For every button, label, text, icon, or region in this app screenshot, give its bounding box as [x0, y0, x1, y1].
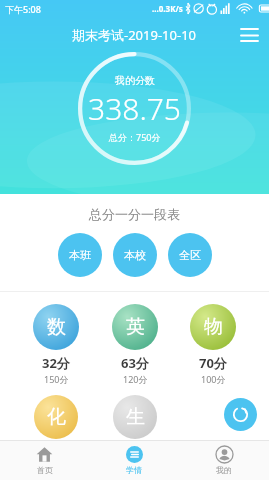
staticText: 120分	[123, 373, 148, 385]
button[interactable]: 我的	[179, 440, 269, 480]
staticText: 我的	[216, 465, 232, 475]
button[interactable]: Refresh	[224, 398, 257, 431]
staticText: 物	[204, 315, 223, 339]
button[interactable]: 英	[112, 304, 158, 385]
staticText: ...0.3K/s	[152, 3, 183, 14]
staticText: 学情	[126, 465, 142, 475]
button[interactable]: 生	[112, 395, 158, 439]
staticText: 32分	[42, 354, 70, 372]
staticText: 150分	[44, 373, 69, 385]
staticText: 总分：750分	[109, 131, 161, 143]
staticText: 我的分数	[115, 74, 155, 87]
staticText: 期末考试-2019-10-10	[72, 26, 197, 44]
button[interactable]: 学情	[89, 440, 179, 480]
staticText: 338.75	[88, 88, 181, 129]
button[interactable]: 数	[33, 304, 79, 385]
staticText: 数	[47, 315, 66, 339]
staticText: 100分	[201, 373, 226, 385]
button[interactable]: Menu	[229, 20, 269, 50]
staticText: 本班	[69, 248, 91, 262]
button[interactable]: 全区	[168, 233, 212, 277]
staticText: 首页	[37, 465, 53, 475]
button[interactable]: 本班	[58, 233, 102, 277]
staticText: 总分一分一段表	[89, 206, 180, 222]
staticText: 70分	[199, 354, 227, 372]
staticText: 63分	[121, 354, 149, 372]
staticText: 生	[126, 405, 145, 429]
staticText: 下午5:08	[5, 3, 41, 15]
button[interactable]: 化	[33, 395, 79, 439]
button[interactable]: 首页	[0, 440, 89, 480]
staticText: 全区	[179, 248, 201, 262]
button[interactable]: 物	[190, 304, 236, 385]
button[interactable]: 本校	[113, 233, 157, 277]
staticText: 化	[47, 405, 66, 429]
staticText: 英	[126, 315, 145, 339]
staticText: 本校	[124, 248, 146, 262]
